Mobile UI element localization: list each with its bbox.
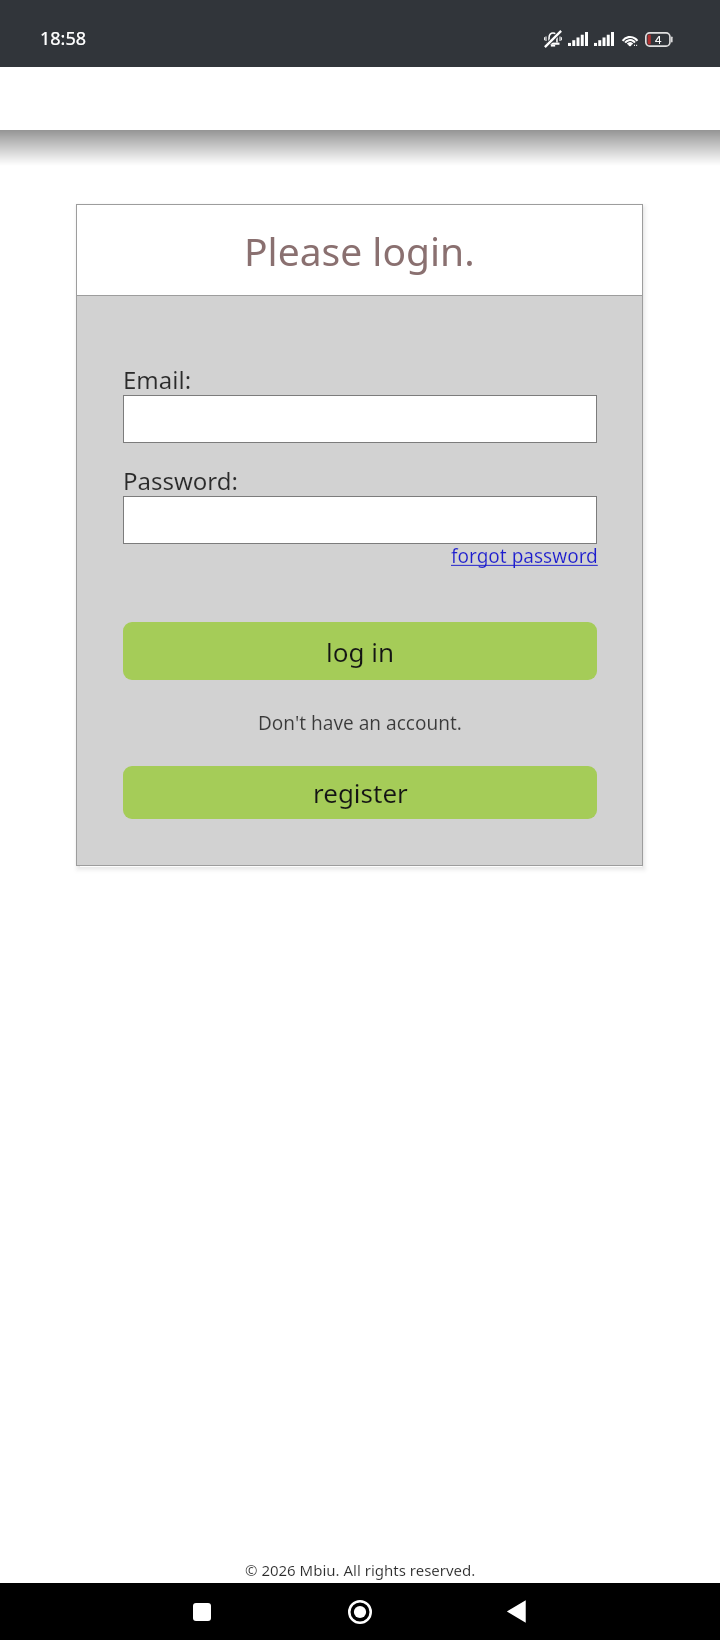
staticText: register bbox=[313, 775, 408, 810]
staticText: 18:58 bbox=[40, 26, 87, 51]
staticText: Don't have an account. bbox=[258, 710, 462, 736]
button[interactable]: Recents bbox=[173, 1583, 230, 1640]
button[interactable]: forgot password bbox=[451, 543, 598, 569]
button[interactable]: Back bbox=[489, 1583, 546, 1640]
button[interactable]: Text input bbox=[123, 496, 597, 544]
staticText: © 2026 Mbiu. All rights reserved. bbox=[245, 1560, 476, 1580]
button[interactable]: Home bbox=[331, 1583, 388, 1640]
button[interactable]: Text input bbox=[123, 395, 597, 443]
button[interactable]: log in bbox=[123, 622, 597, 680]
staticText: 4 bbox=[655, 32, 662, 47]
button[interactable]: register bbox=[123, 766, 597, 819]
staticText: log in bbox=[326, 634, 394, 669]
staticText: Password: bbox=[123, 464, 238, 497]
staticText: Please login. bbox=[244, 224, 475, 277]
staticText: Email: bbox=[123, 363, 192, 396]
